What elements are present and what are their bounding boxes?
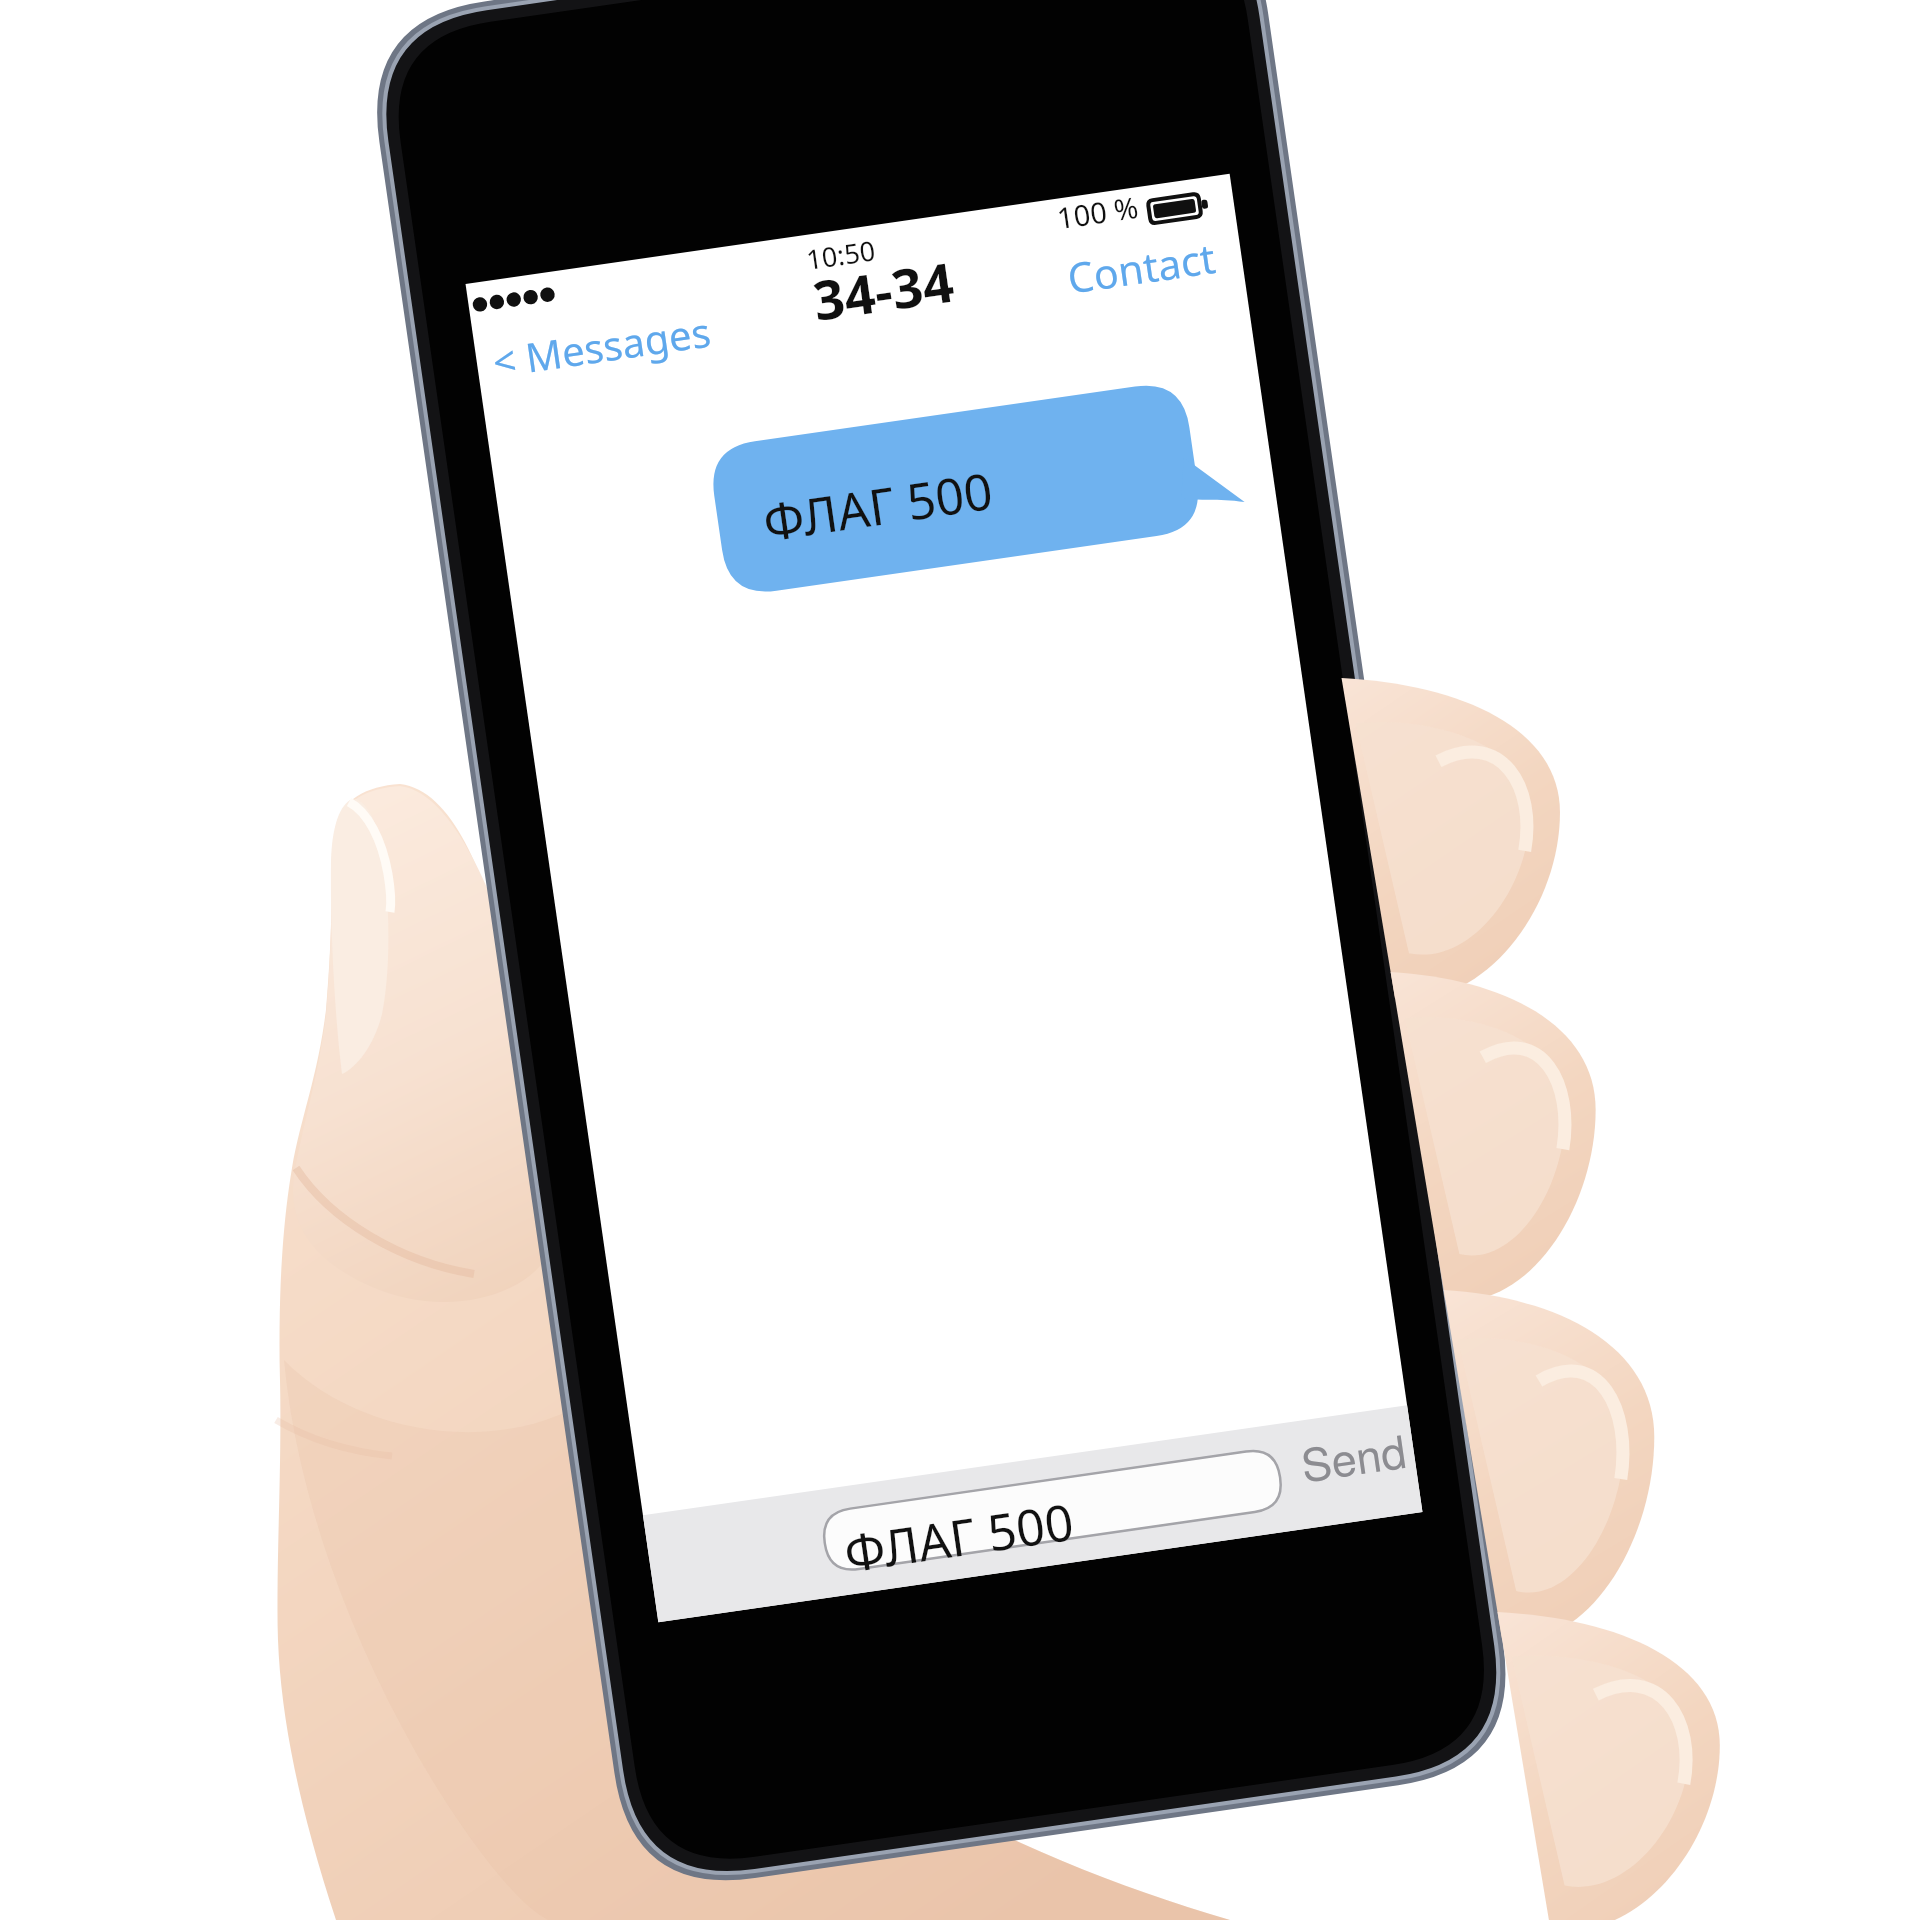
- button[interactable]: Message bubble: ФЛАГ 500: [700, 385, 1250, 585]
- button[interactable]: Message input field: ФЛАГ 500: [808, 1440, 1288, 1550]
- button[interactable]: Back to Messages: [493, 330, 723, 390]
- button[interactable]: Send: [1288, 1405, 1418, 1485]
- button[interactable]: Contact: [1060, 250, 1225, 310]
